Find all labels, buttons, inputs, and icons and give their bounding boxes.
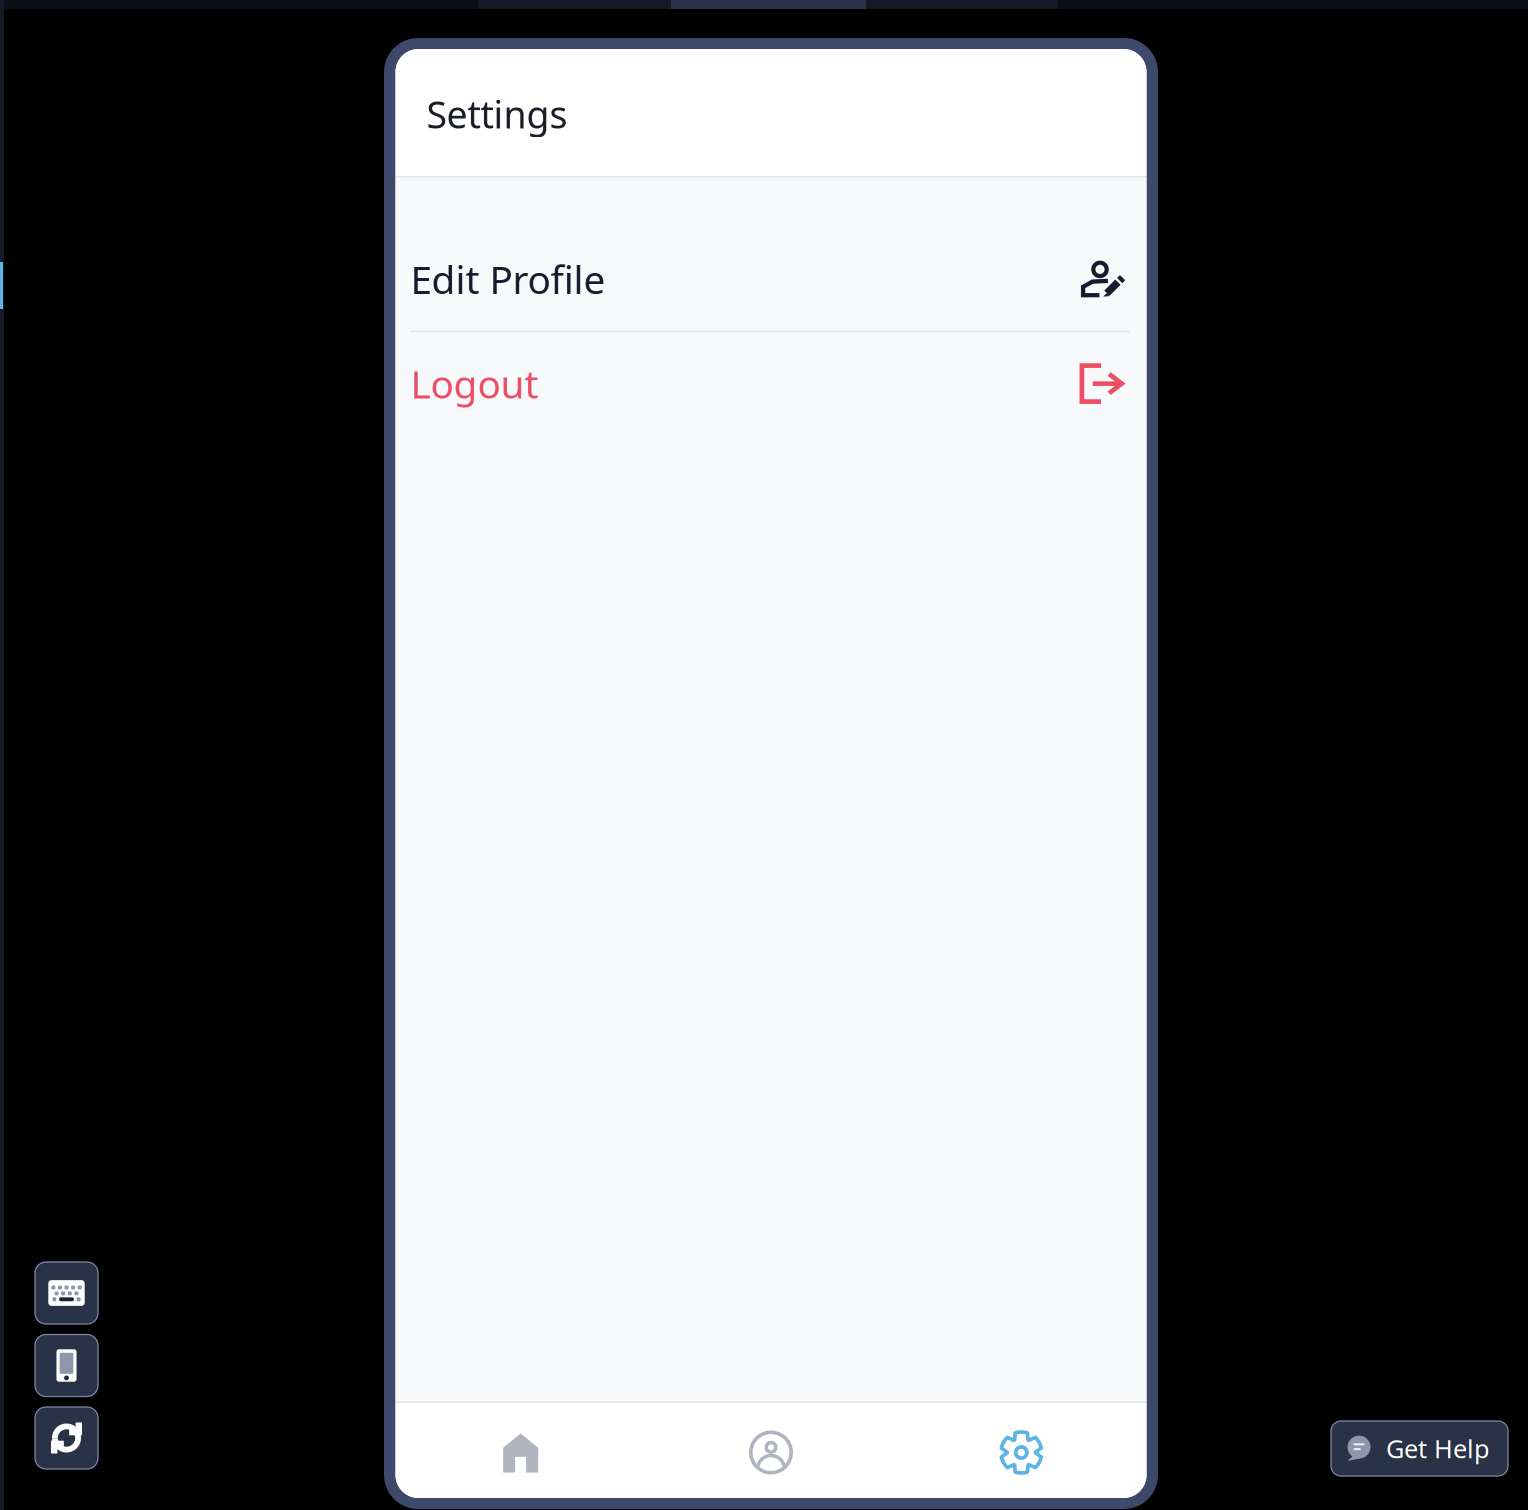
button[interactable]: Reload (35, 1407, 98, 1469)
button[interactable]: Logout (395, 332, 1146, 440)
button[interactable]: Profile (646, 1403, 896, 1498)
button[interactable]: Home (395, 1403, 646, 1498)
button[interactable]: Toggle keyboard (35, 1262, 98, 1324)
staticText: Logout (410, 358, 538, 409)
button[interactable]: Edit Profile (395, 223, 1146, 331)
staticText: Edit Profile (410, 253, 605, 305)
button[interactable]: Device (35, 1334, 98, 1396)
staticText: Get Help (1386, 1432, 1490, 1465)
staticText: Settings (426, 89, 567, 139)
button[interactable]: Get Help (1331, 1421, 1508, 1476)
button[interactable]: Settings (896, 1403, 1146, 1498)
